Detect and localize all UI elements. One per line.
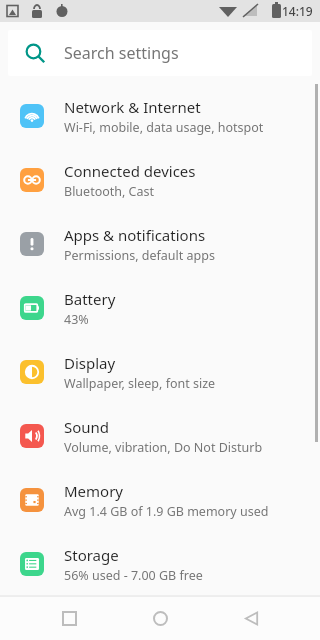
button[interactable]: Search settings <box>8 30 312 76</box>
staticText: Sound <box>64 417 110 437</box>
button[interactable]: Home <box>138 596 182 640</box>
staticText: Network & Internet <box>64 97 201 117</box>
staticText: Storage <box>64 545 119 565</box>
staticText: Avg 1.4 GB of 1.9 GB memory used <box>64 503 269 520</box>
button[interactable]: Memory <box>0 468 320 532</box>
staticText: 14:19 <box>282 3 313 19</box>
button[interactable]: Apps & notifications <box>0 212 320 276</box>
staticText: Connected devices <box>64 161 196 181</box>
button[interactable]: Display <box>0 340 320 404</box>
button[interactable]: Network & Internet <box>0 84 320 148</box>
staticText: Apps & notifications <box>64 225 206 245</box>
staticText: Display <box>64 353 116 373</box>
staticText: Permissions, default apps <box>64 247 215 264</box>
staticText: Search settings <box>64 42 179 64</box>
button[interactable]: Storage <box>0 532 320 596</box>
staticText: 43% <box>64 311 89 328</box>
staticText: Bluetooth, Cast <box>64 183 155 200</box>
button[interactable]: Connected devices <box>0 148 320 212</box>
button[interactable]: Sound <box>0 404 320 468</box>
button[interactable]: Recent apps <box>47 596 91 640</box>
staticText: 56% used - 7.00 GB free <box>64 567 203 584</box>
staticText: Memory <box>64 481 124 501</box>
button[interactable]: Battery <box>0 276 320 340</box>
staticText: Wi-Fi, mobile, data usage, hotspot <box>64 119 264 136</box>
staticText: Volume, vibration, Do Not Disturb <box>64 439 263 456</box>
staticText: Battery <box>64 289 116 309</box>
button[interactable]: Back <box>229 596 273 640</box>
staticText: Wallpaper, sleep, font size <box>64 375 216 392</box>
